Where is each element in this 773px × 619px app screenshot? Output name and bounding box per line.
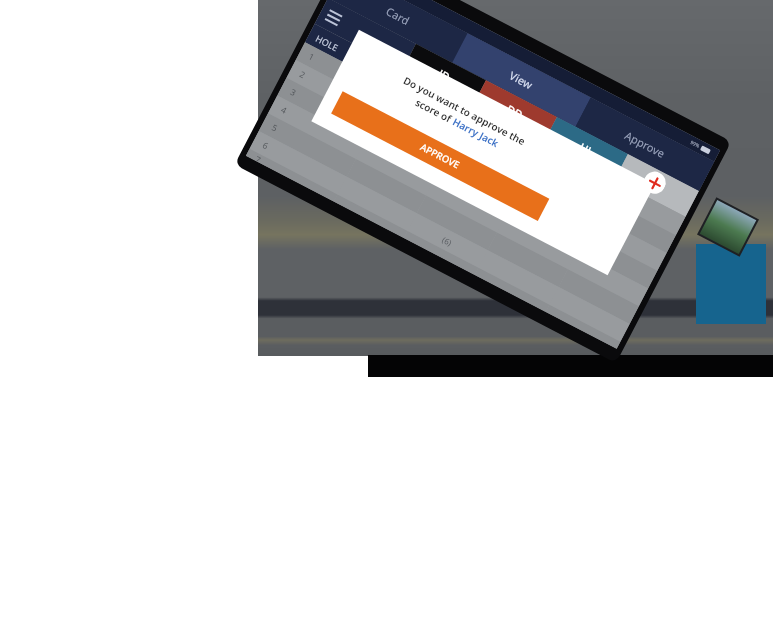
staticText: RJ [649, 176, 665, 195]
staticText: Card [384, 3, 413, 28]
button[interactable] [475, 268, 549, 312]
button[interactable]: Menu [321, 1, 416, 69]
button[interactable] [347, 159, 426, 213]
staticText: Do you want to approve the [401, 73, 528, 148]
button[interactable] [515, 179, 596, 234]
button[interactable] [488, 232, 568, 287]
staticText: View [507, 68, 536, 92]
staticText: 6 [260, 139, 270, 152]
button[interactable]: APPROVE [331, 91, 549, 221]
staticText: 1 [306, 50, 316, 63]
button[interactable] [549, 287, 630, 342]
button[interactable] [546, 305, 620, 349]
button[interactable] [337, 177, 417, 231]
button[interactable] [497, 215, 577, 269]
staticText: HJ [577, 139, 594, 158]
staticText: APPROVE [418, 140, 462, 172]
staticText: Harry Jack [450, 115, 502, 151]
button[interactable] [478, 250, 559, 305]
staticText: (4) [426, 90, 440, 104]
button[interactable] [596, 198, 676, 253]
staticText: 3 [288, 86, 298, 99]
staticText: HOLE [314, 32, 341, 53]
button[interactable] [334, 194, 407, 238]
button[interactable]: Close [640, 168, 670, 197]
button[interactable]: Card [328, 0, 467, 63]
button[interactable] [435, 160, 515, 215]
button[interactable] [384, 88, 463, 142]
staticText: score of [413, 95, 457, 127]
button[interactable] [559, 269, 639, 324]
button[interactable]: View [452, 33, 591, 127]
button[interactable] [506, 197, 586, 252]
button[interactable] [586, 216, 666, 271]
button[interactable] [374, 106, 454, 160]
button[interactable]: (6) [407, 213, 488, 268]
button[interactable]: RJ [614, 154, 699, 217]
button[interactable] [454, 124, 534, 179]
button[interactable] [404, 231, 478, 275]
staticText: 99% [689, 139, 701, 150]
button[interactable]: Approve [576, 97, 714, 191]
staticText: 4 [279, 104, 289, 117]
button[interactable] [426, 178, 506, 232]
button[interactable] [417, 195, 497, 250]
button[interactable]: JD [402, 44, 486, 106]
button[interactable] [568, 252, 648, 306]
staticText: DD [504, 101, 526, 122]
button[interactable] [525, 161, 605, 216]
button[interactable] [577, 234, 657, 289]
staticText: 7 [255, 153, 263, 163]
staticText: 2 [297, 68, 307, 81]
button[interactable]: DD [473, 80, 557, 143]
button[interactable] [444, 142, 525, 197]
button[interactable] [365, 123, 444, 178]
button[interactable]: HJ [543, 117, 628, 180]
staticText: JD [436, 66, 453, 84]
staticText: (6) [440, 234, 454, 248]
button[interactable] [356, 141, 435, 195]
staticText: 5 [269, 121, 279, 134]
staticText: Approve [622, 128, 668, 161]
